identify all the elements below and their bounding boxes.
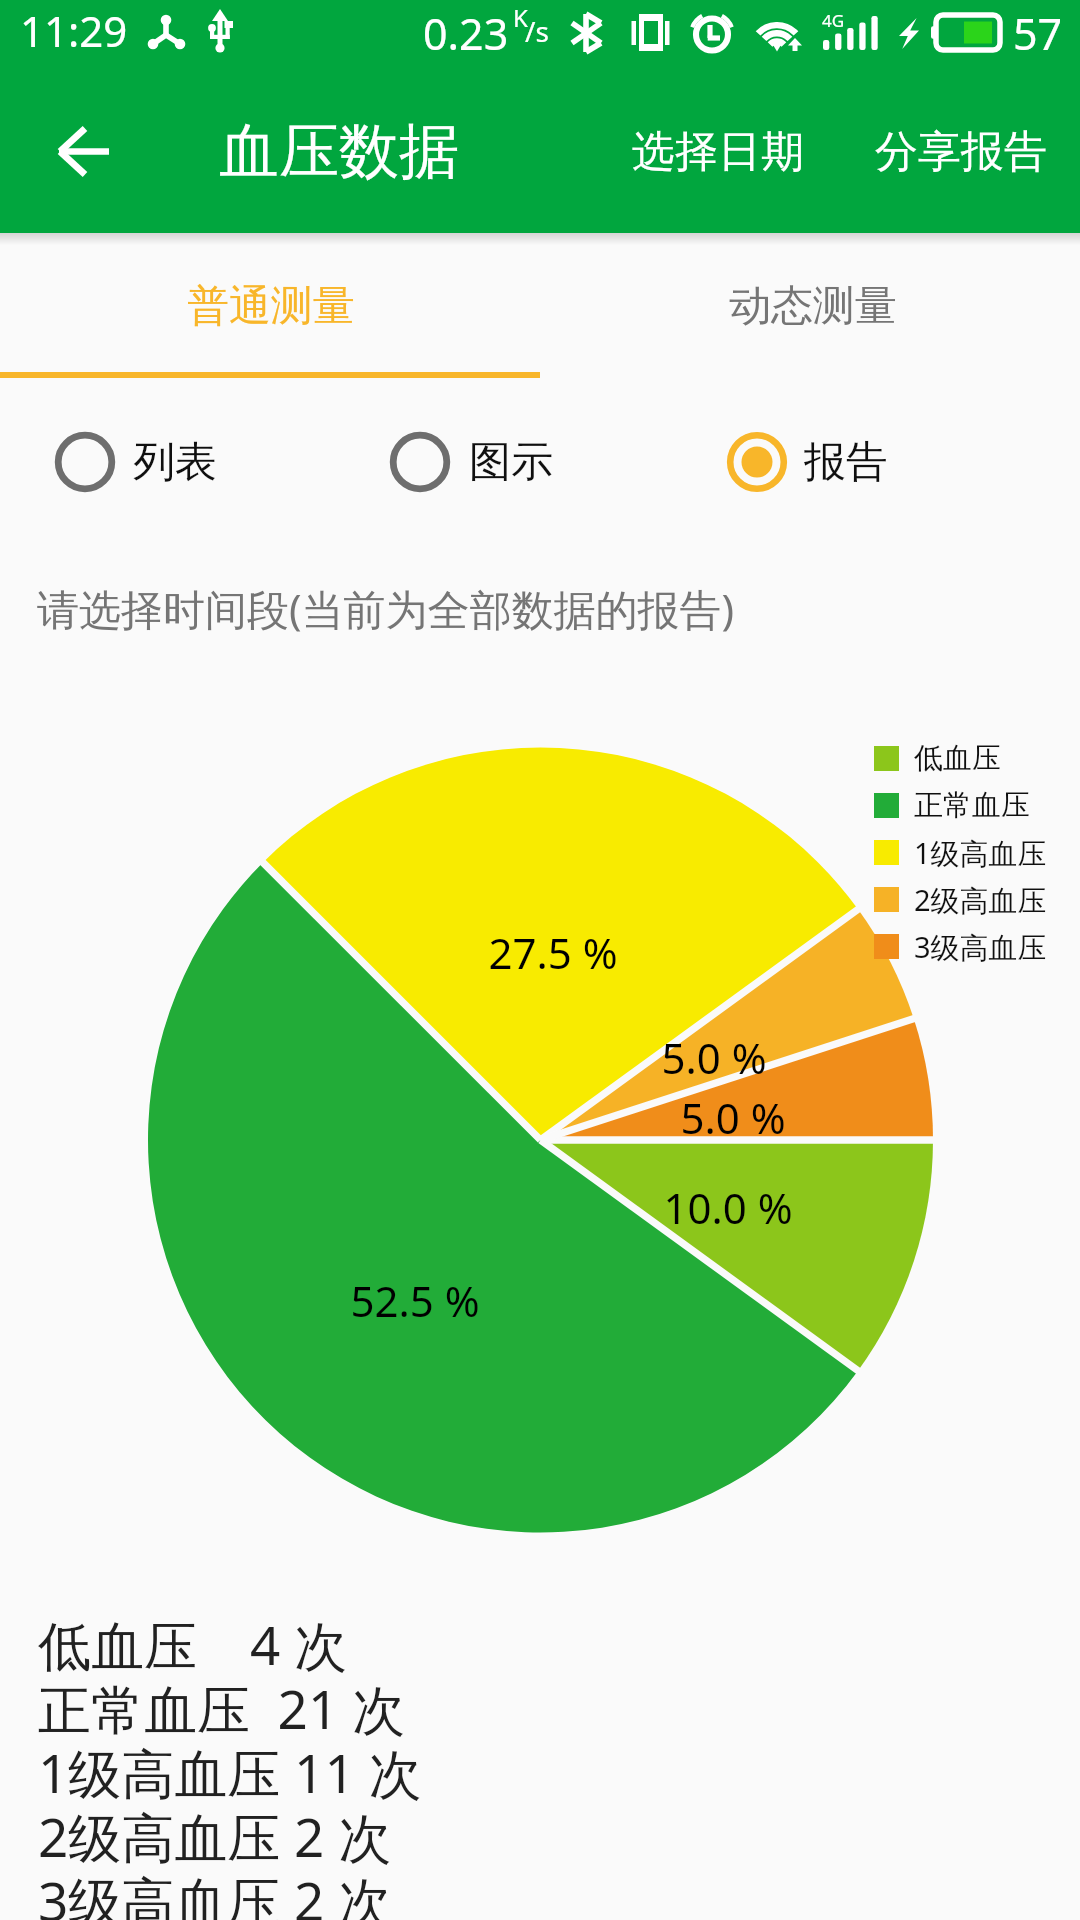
staticText: 3级高血压 2 次 [38, 1864, 392, 1920]
staticText: 2级高血压 2 次 [38, 1800, 392, 1872]
staticText: 普通测量 [187, 280, 355, 333]
staticText: 57 [1013, 4, 1063, 63]
staticText: 4G [822, 9, 845, 32]
staticText: 选择日期 [632, 125, 804, 179]
button[interactable]: 图示 [378, 412, 577, 512]
button[interactable]: 分享报告 [854, 70, 1068, 233]
staticText: 5.0 % [584, 1029, 844, 1086]
staticText: 报告 [804, 436, 888, 489]
staticText: 低血压 4 次 [38, 1608, 348, 1680]
staticText: 1级高血压 [914, 833, 1047, 873]
button[interactable]: 选择日期 [612, 70, 824, 233]
staticText: 11:29 [20, 2, 128, 59]
button[interactable]: 普通测量 [0, 233, 540, 378]
staticText: 图示 [469, 436, 553, 489]
staticText: 10.0 % [598, 1179, 858, 1236]
button[interactable]: 报告 [715, 412, 912, 512]
staticText: /s [525, 12, 549, 50]
staticText: 5.0 % [603, 1089, 863, 1146]
staticText: 血压数据 [219, 114, 459, 190]
button[interactable]: Back [0, 70, 163, 233]
staticText: 动态测量 [729, 280, 897, 333]
staticText: 3级高血压 [914, 927, 1047, 967]
staticText: K [513, 1, 528, 34]
staticText: 52.5 % [285, 1272, 545, 1329]
staticText: 2级高血压 [914, 880, 1047, 920]
staticText: 分享报告 [875, 125, 1047, 179]
staticText: 列表 [133, 436, 217, 489]
staticText: 正常血压 21 次 [38, 1672, 405, 1744]
staticText: 正常血压 [914, 787, 1030, 824]
staticText: 27.5 % [423, 924, 683, 981]
staticText: 请选择时间段(当前为全部数据的报告) [37, 580, 735, 637]
button[interactable]: 动态测量 [540, 233, 1080, 378]
button[interactable]: 列表 [43, 412, 241, 512]
staticText: 低血压 [914, 740, 1001, 777]
staticText: 0.23 [423, 4, 509, 63]
staticText: 1级高血压 11 次 [38, 1736, 422, 1808]
